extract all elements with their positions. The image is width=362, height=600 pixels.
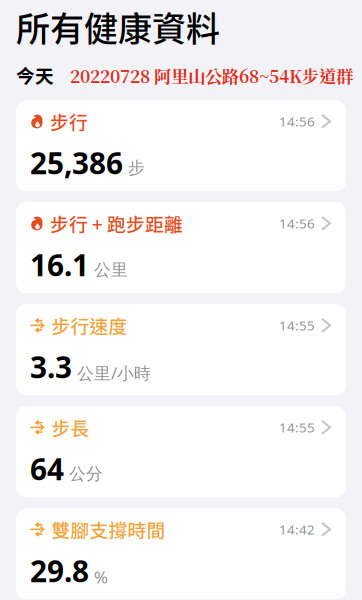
- staticText: 公里/小時: [77, 361, 151, 384]
- button[interactable]: 步長: [16, 406, 346, 497]
- staticText: 20220728 阿里山公路68~54K步道群: [70, 63, 353, 88]
- staticText: 步行速度: [51, 312, 127, 339]
- staticText: 公里: [94, 259, 128, 281]
- staticText: 今天: [16, 61, 54, 88]
- staticText: 29.8: [30, 550, 89, 591]
- staticText: 雙腳支撐時間: [51, 516, 165, 543]
- staticText: %: [94, 565, 108, 588]
- button[interactable]: 步行速度: [16, 304, 346, 395]
- staticText: 16.1: [30, 244, 89, 285]
- button[interactable]: 步行: [16, 100, 346, 191]
- staticText: 64: [30, 448, 64, 489]
- staticText: 14:55: [279, 316, 315, 334]
- staticText: 步長: [51, 414, 89, 441]
- button[interactable]: 步行 + 跑步距離: [16, 202, 346, 293]
- staticText: 14:56: [279, 214, 315, 232]
- staticText: 步行: [50, 108, 88, 135]
- staticText: 公分: [69, 463, 103, 485]
- button[interactable]: 雙腳支撐時間: [16, 508, 346, 599]
- staticText: 所有健康資料: [16, 2, 220, 51]
- staticText: 步: [128, 157, 145, 179]
- staticText: 3.3: [30, 346, 72, 387]
- staticText: 25,386: [30, 142, 123, 183]
- staticText: 14:56: [279, 112, 315, 130]
- staticText: 14:55: [279, 418, 315, 436]
- staticText: 14:42: [279, 520, 315, 538]
- staticText: 步行 + 跑步距離: [50, 210, 183, 237]
